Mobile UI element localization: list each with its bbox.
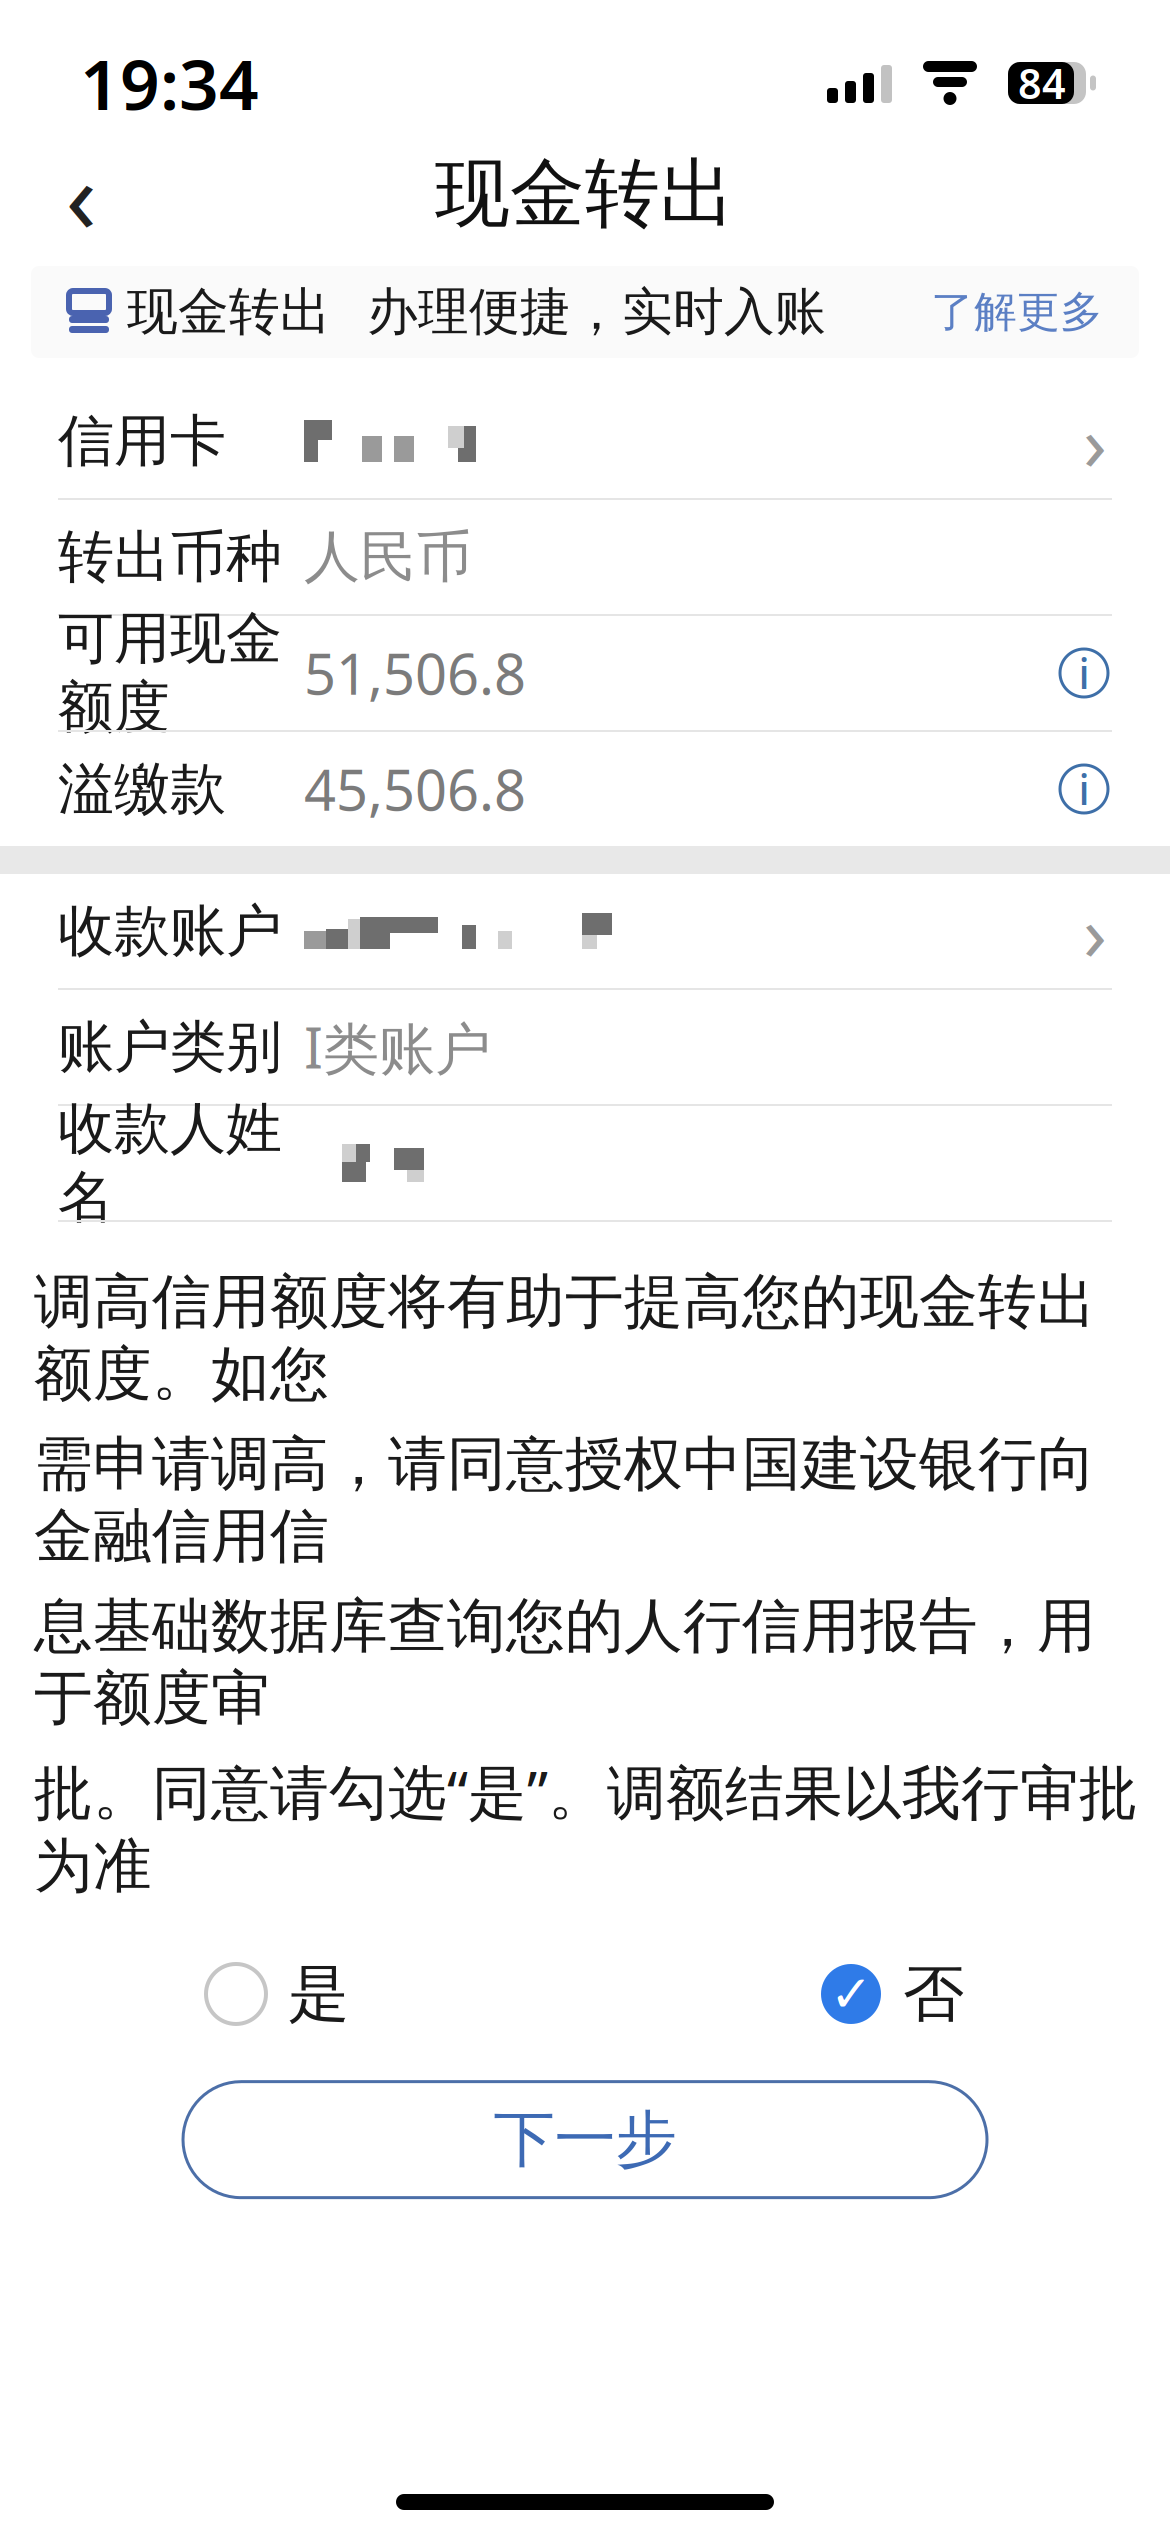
staticText: 19:34 <box>80 37 259 129</box>
staticText: 收款账户 <box>58 897 282 965</box>
button[interactable]: 溢缴款说明 <box>1056 761 1112 817</box>
button[interactable]: ✓ <box>821 1956 964 2032</box>
staticText: 可用现金额度 <box>58 604 282 742</box>
staticText: ✓ <box>830 1965 872 2023</box>
staticText: 账户类别 <box>58 1013 282 1081</box>
button[interactable]: 收款账户 <box>0 874 1170 988</box>
staticText: 需申请调高，请同意授权中国建设银行向金融信用信 <box>34 1428 1096 1572</box>
staticText: 现金转出 <box>127 281 331 343</box>
staticText: 收款人姓名 <box>58 1094 282 1232</box>
staticText: i <box>1078 762 1089 816</box>
staticText: 调高信用额度将有助于提高您的现金转出额度。如您 <box>34 1266 1096 1410</box>
staticText: 是 <box>288 1956 349 2032</box>
staticText: 办理便捷，实时入账 <box>367 281 826 343</box>
staticText: 51,506.8 <box>304 636 526 710</box>
staticText: i <box>1078 646 1089 700</box>
staticText: 转出币种 <box>58 523 282 591</box>
staticText: 信用卡 <box>58 407 226 475</box>
staticText: 下一步 <box>493 2102 676 2177</box>
staticText: 了解更多 <box>931 286 1103 338</box>
button[interactable]: 现金转出 <box>31 266 1139 358</box>
button[interactable]: 是 <box>206 1956 349 2032</box>
staticText: › <box>1083 390 1107 492</box>
staticText: 人民币 <box>304 523 472 591</box>
button[interactable]: 返回 <box>26 139 136 249</box>
staticText: ‹ <box>65 127 96 261</box>
staticText: 45,506.8 <box>304 752 526 826</box>
staticText: 现金转出 <box>435 148 735 240</box>
button[interactable]: 下一步 <box>183 2082 987 2198</box>
staticText: › <box>1083 880 1107 982</box>
button[interactable]: 信用卡 <box>0 384 1170 498</box>
button[interactable]: 可用现金额度说明 <box>1056 645 1112 701</box>
staticText: 息基础数据库查询您的人行信用报告，用于额度审 <box>34 1590 1096 1734</box>
staticText: 否 <box>903 1956 964 2032</box>
staticText: 84 <box>1018 56 1066 110</box>
staticText: 批。同意请勾选“是”。调额结果以我行审批为准 <box>34 1752 1138 1902</box>
staticText: I类账户 <box>304 1010 491 1084</box>
staticText: 溢缴款 <box>58 755 226 823</box>
